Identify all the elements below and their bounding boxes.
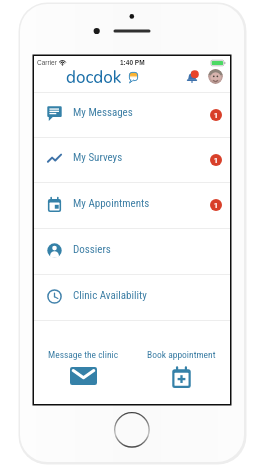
button[interactable]: My Surveys: [34, 137, 230, 182]
button[interactable]: Profile: [208, 69, 223, 84]
staticText: 1:40 PM: [120, 59, 145, 66]
button[interactable]: Dossiers: [34, 228, 230, 274]
staticText: Clinic Availability: [73, 289, 147, 302]
button[interactable]: Message the clinic: [34, 321, 132, 404]
staticText: docdok: [66, 66, 122, 89]
button[interactable]: My Messages: [34, 92, 230, 137]
staticText: My Appointments: [73, 197, 150, 210]
staticText: Dossiers: [73, 243, 111, 256]
staticText: Book appointment: [147, 349, 216, 360]
staticText: My Messages: [73, 106, 133, 119]
button[interactable]: Clinic Availability: [34, 274, 230, 320]
staticText: My Surveys: [73, 151, 123, 164]
button[interactable]: My Appointments: [34, 182, 230, 228]
button[interactable]: Notifications: [185, 70, 199, 84]
staticText: 1: [214, 201, 218, 210]
button[interactable]: Book appointment: [132, 321, 230, 404]
staticText: Message the clinic: [48, 349, 119, 360]
staticText: Carrier: [37, 59, 57, 66]
staticText: 1: [214, 156, 218, 165]
staticText: 1: [214, 111, 218, 120]
